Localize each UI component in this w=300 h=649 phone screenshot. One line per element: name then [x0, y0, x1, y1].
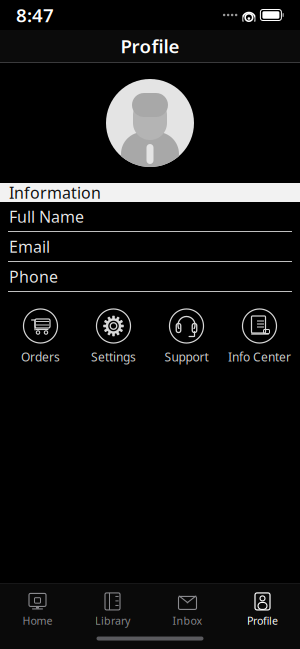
staticText: Info Center — [228, 349, 291, 365]
staticText: Library — [95, 613, 130, 628]
staticText: Information — [9, 182, 101, 203]
button[interactable]: Profile — [225, 592, 300, 628]
button[interactable]: Inbox — [150, 592, 225, 628]
staticText: Profile — [247, 613, 278, 628]
staticText: Phone — [9, 266, 58, 287]
button[interactable]: Orders — [4, 309, 77, 365]
button[interactable]: Library — [75, 592, 150, 628]
staticText: Full Name — [9, 206, 84, 227]
staticText: Email — [9, 236, 50, 257]
button[interactable]: Support — [150, 309, 223, 365]
button[interactable]: Home — [0, 592, 75, 628]
staticText: Home — [22, 613, 52, 628]
staticText: Settings — [91, 349, 136, 365]
button[interactable]: Info Center — [223, 309, 296, 365]
staticText: Inbox — [172, 613, 202, 628]
staticText: Support — [164, 349, 208, 365]
staticText: Orders — [21, 349, 60, 365]
button[interactable]: Settings — [77, 309, 150, 365]
staticText: Profile — [120, 34, 179, 58]
staticText: 8:47 — [16, 3, 54, 27]
